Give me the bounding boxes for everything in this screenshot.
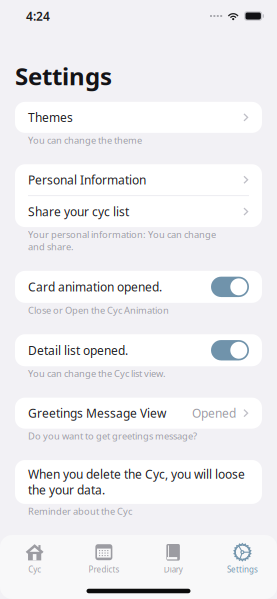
button[interactable]: Personal Information (15, 164, 262, 195)
button[interactable]: Cyc (0, 539, 69, 579)
button[interactable]: Diary (138, 539, 208, 579)
button[interactable]: Detail list opened. (15, 334, 262, 366)
staticText: You can change the theme (28, 134, 142, 146)
staticText: Opened (192, 405, 236, 421)
staticText: You can change the Cyc list view. (28, 367, 166, 380)
staticText: Close or Open the Cyc Animation (28, 304, 169, 316)
staticText: Settings (227, 564, 258, 575)
staticText: Cyc (28, 564, 41, 575)
staticText: When you delete the Cyc, you will loose … (28, 466, 245, 498)
staticText: Share your cyc list (28, 204, 129, 219)
button[interactable]: Settings (208, 539, 277, 579)
button[interactable]: Greetings Message View (15, 398, 262, 429)
button[interactable]: Themes (15, 102, 262, 133)
staticText: 4:24 (26, 8, 50, 24)
staticText: Predicts (88, 564, 119, 575)
staticText: Card animation opened. (28, 279, 162, 295)
staticText: Do you want to get greetings message? (28, 430, 197, 442)
button[interactable]: Card animation opened. (15, 271, 262, 303)
staticText: Detail list opened. (28, 342, 128, 358)
button[interactable]: Share your cyc list (15, 196, 262, 227)
button[interactable]: Predicts (69, 539, 138, 579)
staticText: Settings (15, 60, 112, 92)
staticText: Themes (28, 109, 73, 125)
staticText: Reminder about the Cyc (28, 505, 132, 517)
staticText: Your personal information: You can chang… (28, 228, 216, 253)
staticText: Diary (164, 564, 183, 575)
staticText: Greetings Message View (28, 405, 166, 421)
staticText: Personal Information (28, 172, 146, 188)
